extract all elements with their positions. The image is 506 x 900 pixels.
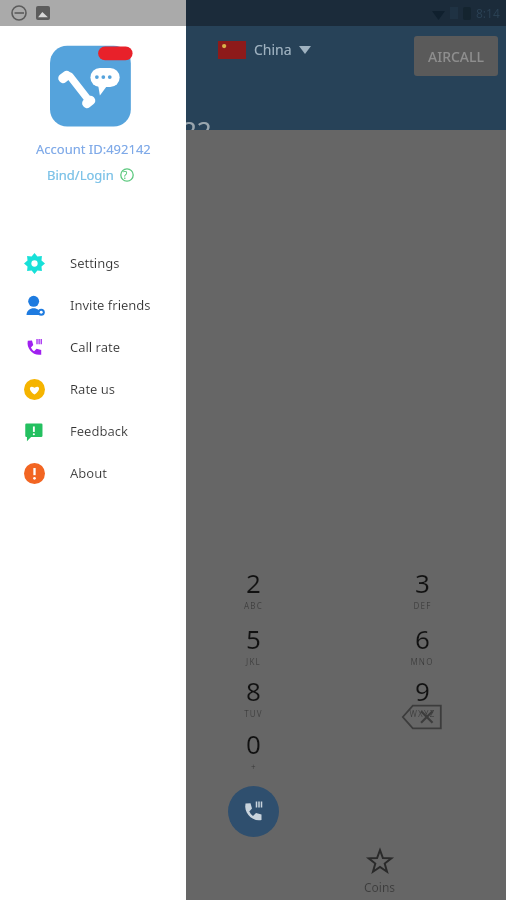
button[interactable]: Backspace [394,700,450,734]
staticText: Coins [364,879,396,895]
button[interactable]: 0 [211,726,295,774]
button[interactable]: 9 [380,673,464,721]
staticText: China [254,40,292,59]
staticText: Bind/Login [47,166,114,184]
staticText: Invite friends [70,296,151,314]
staticText: 8 [246,673,261,708]
staticText: ABC [244,600,263,611]
staticText: + [251,761,257,772]
staticText: ? [123,168,128,182]
button[interactable]: Settings [0,242,186,284]
button[interactable]: Call [228,786,279,837]
staticText: 5 [246,621,261,656]
button[interactable]: Contacts [0,842,253,900]
button[interactable]: Call rate [0,326,186,368]
button[interactable]: App icon [50,44,136,130]
staticText: DEF [413,600,432,611]
staticText: Settings [70,254,120,272]
button[interactable]: AIRCALL [414,36,498,76]
staticText: AIRCALL [428,47,484,66]
button[interactable]: Feedback [0,410,186,452]
staticText: MNO [410,656,434,667]
button[interactable]: 2 [211,565,295,613]
staticText: Now let's start! [6,320,160,350]
staticText: TUV [244,708,263,719]
staticText: Feedback [70,422,128,440]
button[interactable]: Invite friends [0,284,186,326]
staticText: 22 [182,112,212,130]
staticText: Account ID:492142 [36,140,151,158]
staticText: 9 [415,673,430,708]
button[interactable]: 8 [211,673,295,721]
staticText: JKL [246,656,261,667]
button[interactable]: 3 [380,565,464,613]
button[interactable]: About [0,452,186,494]
staticText: About [70,464,107,482]
staticText: Rate us [70,380,116,398]
button[interactable]: Rate us [0,368,186,410]
staticText: WXYZ [409,708,436,719]
button[interactable]: 6 [380,621,464,669]
button[interactable]: China [218,40,311,59]
staticText: 2 [246,565,261,600]
staticText: 8:14 [476,5,500,21]
button[interactable]: 5 [211,621,295,669]
staticText: Call rate [70,338,121,356]
staticText: 6 [415,621,430,656]
button[interactable]: Coins [253,842,506,900]
staticText: 0 [246,726,261,761]
button[interactable]: Bind/Login [47,166,139,184]
staticText: 3 [415,565,430,600]
